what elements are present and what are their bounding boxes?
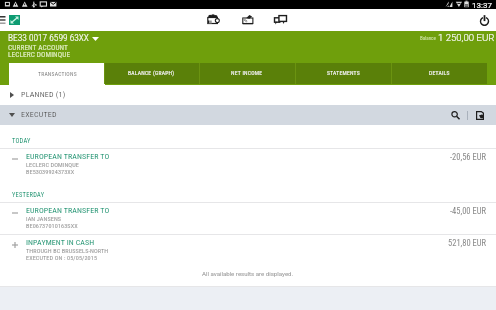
staticText: EXECUTED ON : 05/05/2015 xyxy=(26,254,98,261)
button[interactable]: Cards xyxy=(204,10,221,30)
staticText: LECLERC DOMINQUE xyxy=(26,161,79,168)
staticText: STATEMENTS xyxy=(327,70,360,77)
staticText: IAN JANSENS xyxy=(26,215,62,222)
staticText: DETAILS xyxy=(429,70,450,77)
staticText: Balance xyxy=(420,35,436,41)
button[interactable]: BALANCE (GRAPH) xyxy=(104,63,199,84)
staticText: NET INCOME xyxy=(231,70,263,77)
button[interactable]: Menu xyxy=(0,9,8,31)
staticText: 1 250,00 EUR xyxy=(438,32,495,43)
staticText: 521,80 EUR xyxy=(448,238,487,248)
button[interactable]: EUROPEAN TRANSFER TO xyxy=(0,149,496,179)
staticText: -20,56 EUR xyxy=(450,152,487,162)
button[interactable]: PLANNED (1) xyxy=(0,85,496,105)
staticText: EUROPEAN TRANSFER TO xyxy=(26,152,110,161)
button[interactable]: Log out xyxy=(476,10,492,30)
staticText: 13:37 xyxy=(472,1,492,10)
staticText: -45,00 EUR xyxy=(450,206,487,216)
button[interactable]: EUROPEAN TRANSFER TO xyxy=(0,203,496,234)
staticText: EXECUTED xyxy=(21,110,57,119)
button[interactable]: Export xyxy=(473,107,487,123)
button[interactable]: INPAYMENT IN CASH xyxy=(0,235,496,266)
staticText: CURRENT ACCOUNT xyxy=(8,43,68,52)
staticText: LECLERC DOMINQUE xyxy=(8,50,71,59)
button[interactable]: STATEMENTS xyxy=(295,63,391,84)
button[interactable]: NET INCOME xyxy=(199,63,295,84)
staticText: All available results are displayed. xyxy=(202,270,294,277)
staticText: YESTERDAY xyxy=(12,191,45,199)
staticText: BALANCE (GRAPH) xyxy=(128,70,175,77)
button[interactable]: Chat xyxy=(272,10,289,30)
button[interactable]: Messages xyxy=(239,10,256,30)
staticText: TRANSACTIONS xyxy=(38,71,77,78)
staticText: BE53039924373XX xyxy=(26,168,75,175)
staticText: EUROPEAN TRANSFER TO xyxy=(26,206,110,215)
staticText: TODAY xyxy=(12,137,31,145)
button[interactable]: App logo xyxy=(9,15,20,25)
button[interactable]: EXECUTED xyxy=(0,105,496,125)
staticText: THROUGH BC BRUSSELS-NORTH xyxy=(26,247,109,254)
staticText: PLANNED (1) xyxy=(21,90,66,99)
staticText: INPAYMENT IN CASH xyxy=(26,238,95,247)
button[interactable]: TRANSACTIONS xyxy=(9,63,105,85)
staticText: BE33 0017 6599 63XX xyxy=(8,32,89,43)
staticText: BE06737010163SXX xyxy=(26,222,78,229)
button[interactable]: DETAILS xyxy=(391,63,487,84)
button[interactable]: Search xyxy=(448,107,462,123)
